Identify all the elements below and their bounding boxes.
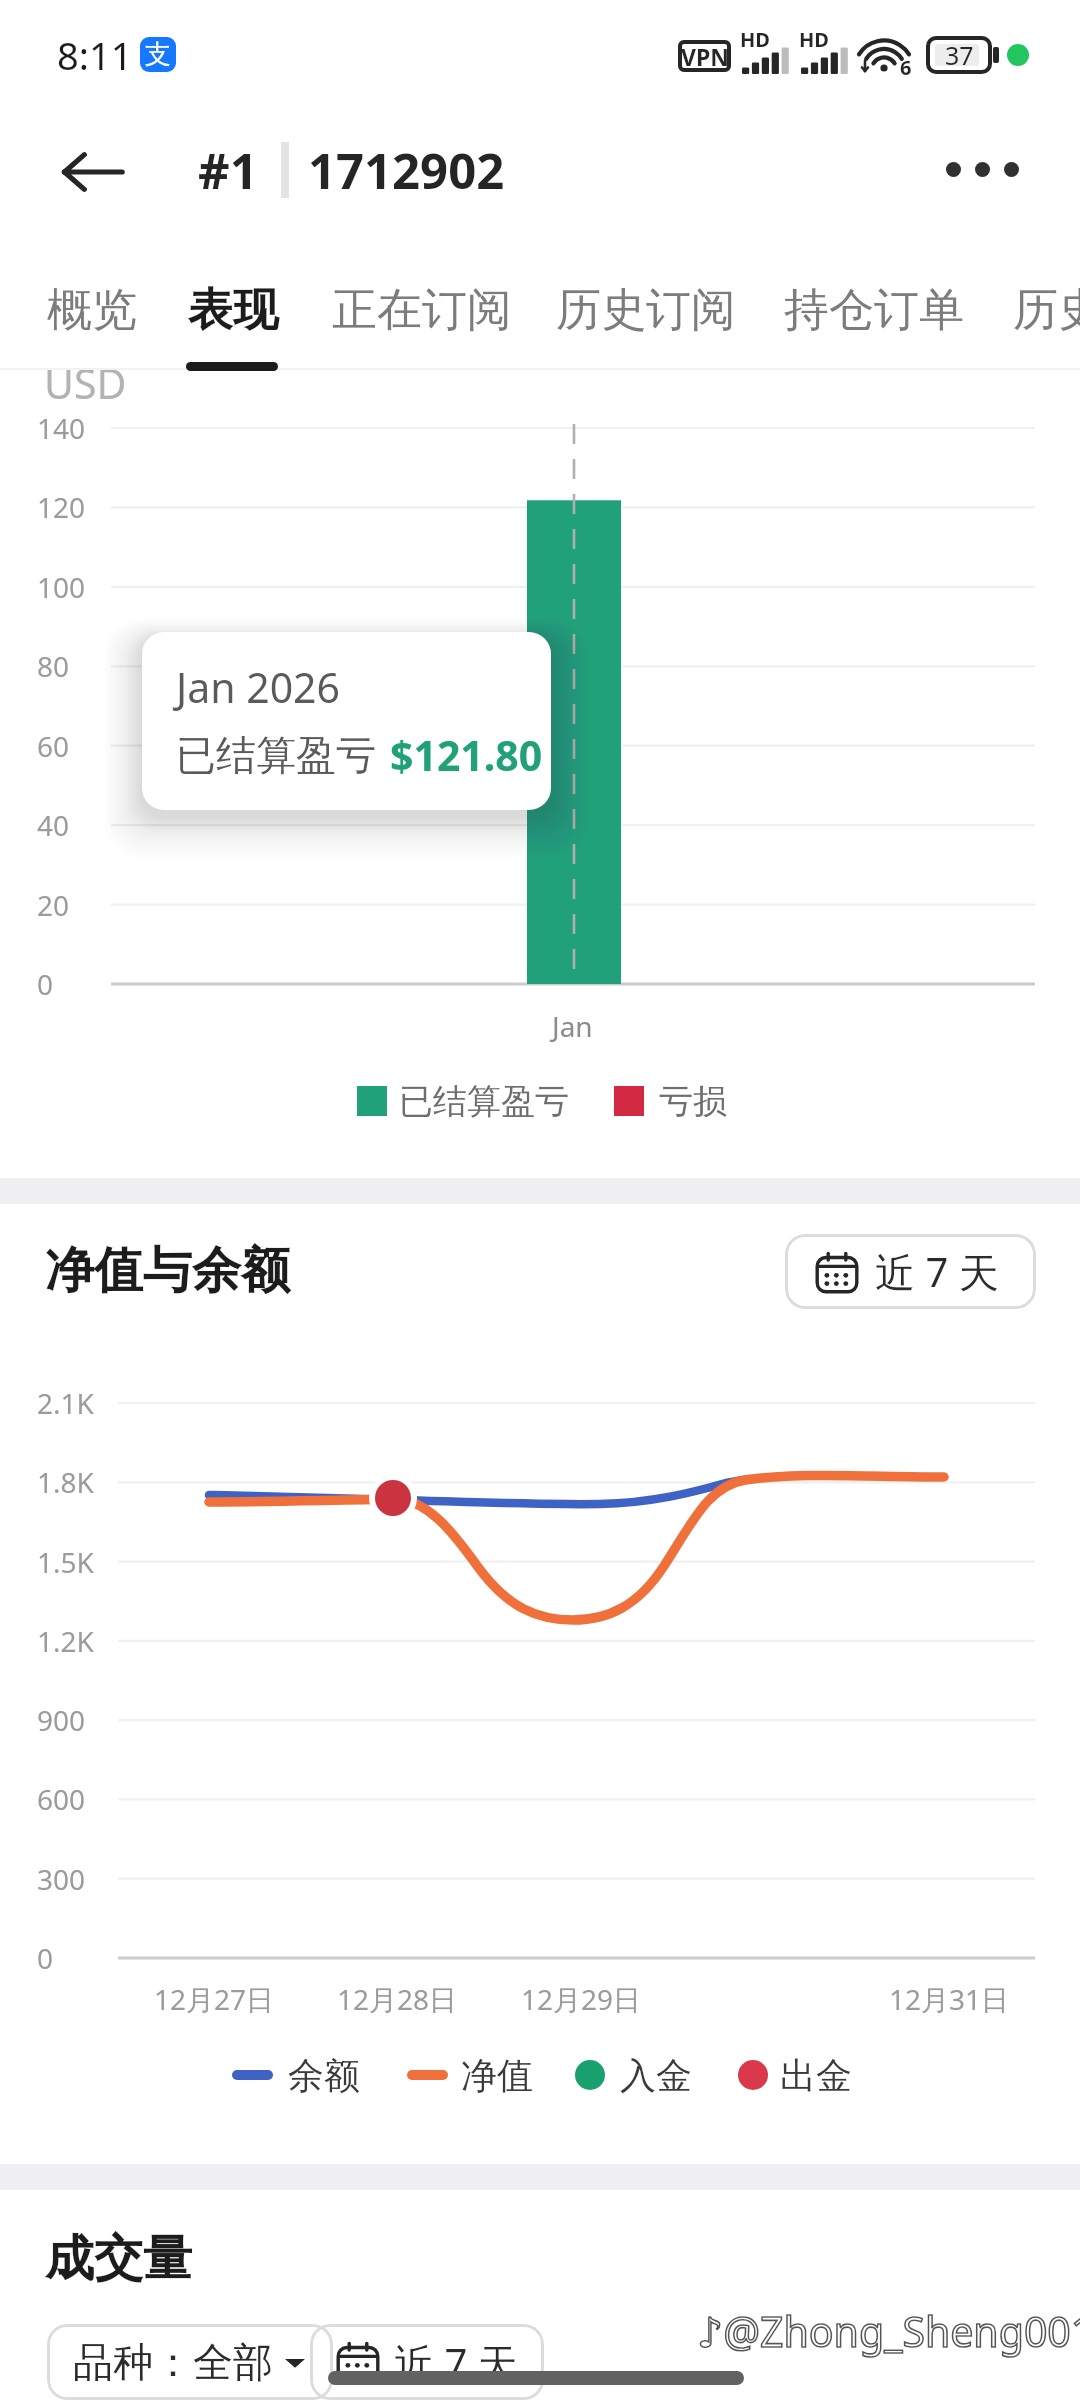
button[interactable]: 正在订阅 <box>316 270 528 351</box>
staticText: 品种：全部 <box>73 2337 273 2387</box>
staticText: 1.8K <box>37 1463 94 1501</box>
staticText: 12月28日 <box>337 1980 458 2018</box>
button[interactable]: 持仓订单 <box>768 270 980 351</box>
button[interactable]: 表现 <box>172 270 294 351</box>
staticText: 已结算盈亏 <box>176 730 376 780</box>
staticText: 正在订阅 <box>332 282 512 339</box>
staticText: 37 <box>945 38 974 72</box>
staticText: 900 <box>37 1701 86 1739</box>
staticText: 0 <box>37 1939 54 1977</box>
staticText: 余额 <box>288 2053 360 2098</box>
staticText: $121.80 <box>390 727 543 783</box>
staticText: 亏损 <box>659 1080 727 1123</box>
staticText: 净值 <box>461 2053 533 2098</box>
staticText: 40 <box>37 806 70 844</box>
staticText: 1.5K <box>37 1543 94 1581</box>
staticText: 近 7 天 <box>394 2335 518 2390</box>
button[interactable]: 近 7 天 <box>310 2324 544 2400</box>
button[interactable]: 历史订阅 <box>540 270 752 351</box>
staticText: VPN <box>681 41 729 72</box>
staticText: 12月27日 <box>154 1980 275 2018</box>
staticText: HD <box>799 26 829 53</box>
staticText: 表现 <box>188 282 278 339</box>
button[interactable]: 近 7 天 <box>785 1234 1036 1309</box>
staticText: USD <box>44 355 127 403</box>
staticText: 140 <box>37 409 86 447</box>
staticText: 80 <box>37 647 70 685</box>
staticText: 持仓订单 <box>784 282 964 339</box>
staticText: 1.2K <box>37 1622 94 1660</box>
button[interactable]: More options <box>932 130 1032 208</box>
staticText: 1712902 <box>308 137 505 204</box>
staticText: 6 <box>900 54 912 81</box>
staticText: 支 <box>145 38 171 71</box>
staticText: 入金 <box>620 2053 692 2098</box>
staticText: Jan <box>552 1007 593 1045</box>
staticText: HD <box>740 26 770 53</box>
button[interactable]: 概览 <box>31 270 153 351</box>
staticText: 已结算盈亏 <box>399 1080 569 1123</box>
staticText: 近 7 天 <box>875 1244 999 1299</box>
staticText: 0 <box>37 965 54 1003</box>
staticText: ♪@Zhong_Sheng001 <box>697 2303 1080 2359</box>
button[interactable]: 历史 <box>997 270 1080 351</box>
staticText: 120 <box>37 488 86 526</box>
staticText: 历史 <box>1013 282 1080 339</box>
staticText: 60 <box>37 727 70 765</box>
staticText: 出金 <box>780 2053 852 2098</box>
staticText: 历史订阅 <box>556 282 736 339</box>
staticText: Jan 2026 <box>176 659 340 715</box>
staticText: #1 <box>198 137 258 204</box>
staticText: 12月29日 <box>521 1980 642 2018</box>
staticText: 净值与余额 <box>45 1240 290 1302</box>
staticText: 2.1K <box>37 1384 94 1422</box>
staticText: 100 <box>37 568 86 606</box>
staticText: 8:11 <box>57 29 133 81</box>
staticText: 12月31日 <box>889 1980 1010 2018</box>
button[interactable]: 品种：全部 <box>47 2324 333 2400</box>
staticText: 成交量 <box>45 2228 192 2290</box>
button[interactable]: Back <box>54 133 132 211</box>
staticText: 概览 <box>47 282 137 339</box>
staticText: 300 <box>37 1860 86 1898</box>
staticText: 20 <box>37 886 70 924</box>
staticText: 600 <box>37 1780 86 1818</box>
